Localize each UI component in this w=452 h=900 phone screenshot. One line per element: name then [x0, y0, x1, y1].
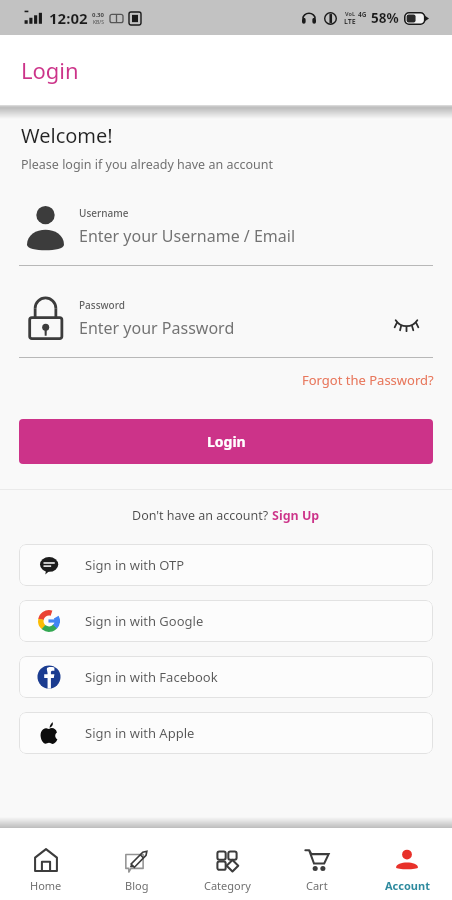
staticText: 12:02: [49, 8, 88, 28]
staticText: Enter your Username / Email: [79, 225, 296, 247]
staticText: Category: [204, 878, 251, 893]
button[interactable]: Account: [362, 828, 452, 900]
staticText: Login: [207, 432, 246, 451]
button[interactable]: Sign in with Google: [19, 600, 433, 642]
staticText: VoL: [345, 10, 355, 17]
button[interactable]: Category: [182, 828, 272, 900]
button[interactable]: Login: [19, 419, 433, 464]
staticText: LTE: [344, 17, 356, 27]
staticText: Username: [79, 206, 129, 220]
staticText: Please login if you already have an acco…: [21, 156, 273, 173]
staticText: 58%: [371, 9, 399, 27]
staticText: Home: [30, 878, 62, 893]
staticText: 4G: [358, 10, 367, 19]
button[interactable]: Sign in with Apple: [19, 712, 433, 754]
button[interactable]: Home: [0, 828, 91, 900]
staticText: Sign in with Google: [85, 612, 204, 630]
staticText: Sign in with Facebook: [85, 668, 218, 686]
button[interactable]: Forgot the Password?: [302, 371, 452, 389]
button[interactable]: Sign in with Facebook: [19, 656, 433, 698]
staticText: Sign in with OTP: [85, 556, 185, 574]
staticText: Account: [385, 878, 430, 893]
staticText: Enter your Password: [79, 317, 235, 339]
button[interactable]: Sign Up: [272, 507, 320, 524]
button[interactable]: Sign in with OTP: [19, 544, 433, 586]
staticText: 0.30: [92, 11, 104, 19]
staticText: Cart: [306, 878, 328, 893]
button[interactable]: Blog: [91, 828, 182, 900]
staticText: Blog: [125, 878, 149, 893]
button[interactable]: Show password: [395, 313, 418, 334]
staticText: Welcome!: [21, 122, 113, 149]
staticText: Sign in with Apple: [85, 724, 195, 742]
staticText: Don't have an account?: [132, 507, 272, 524]
button[interactable]: Cart: [272, 828, 362, 900]
staticText: Password: [79, 298, 125, 312]
staticText: KB/S: [93, 19, 104, 26]
button[interactable]: Login: [21, 55, 79, 85]
